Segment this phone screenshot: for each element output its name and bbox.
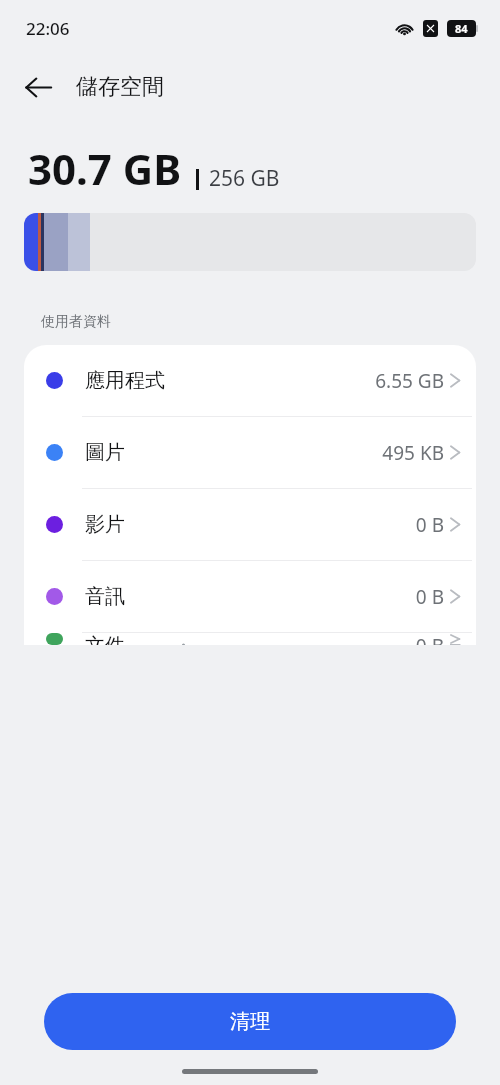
staticText: 音訊: [85, 584, 125, 609]
button[interactable]: 影片: [24, 489, 476, 560]
staticText: 文件: [85, 633, 125, 645]
staticText: 84: [455, 21, 468, 36]
staticText: 22:06: [26, 17, 70, 40]
staticText: 256 GB: [209, 164, 280, 193]
staticText: 0 B: [415, 633, 444, 645]
staticText: 使用者資料: [41, 313, 111, 331]
button[interactable]: 圖片: [24, 417, 476, 488]
staticText: 應用程式: [85, 368, 165, 393]
staticText: 495 KB: [382, 440, 444, 466]
staticText: 儲存空間: [76, 73, 164, 101]
staticText: 圖片: [85, 440, 125, 465]
button[interactable]: 文件: [24, 633, 476, 645]
button[interactable]: 音訊: [24, 561, 476, 632]
staticText: 0 B: [415, 512, 444, 538]
staticText: 0 B: [415, 584, 444, 610]
staticText: 影片: [85, 512, 125, 537]
staticText: 6.55 GB: [375, 368, 444, 394]
button[interactable]: 清理: [44, 993, 456, 1050]
staticText: 清理: [230, 1009, 270, 1034]
staticText: 30.7 GB: [28, 140, 182, 197]
button[interactable]: 返回: [14, 63, 62, 111]
button[interactable]: 應用程式: [24, 345, 476, 416]
